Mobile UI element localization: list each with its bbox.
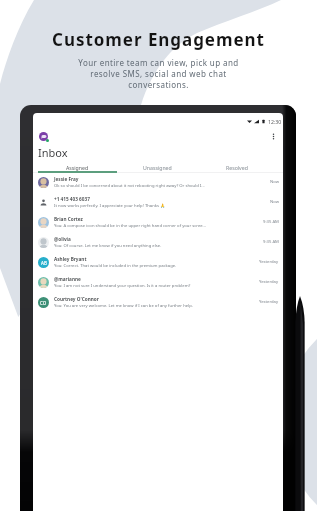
staticText: Customer Engagement <box>52 28 265 51</box>
staticText: AB <box>41 260 47 266</box>
button[interactable]: Jessie Fray <box>33 172 283 192</box>
staticText: Inbox <box>38 145 68 160</box>
staticText: @marianne <box>54 276 81 282</box>
button[interactable]: AB <box>33 252 283 272</box>
staticText: Yesterday <box>259 259 279 265</box>
staticText: Now <box>270 179 279 185</box>
staticText: You: Correct. That would be included in … <box>54 263 177 269</box>
staticText: You: You are very welcome. Let me know i… <box>54 303 193 309</box>
staticText: Yesterday <box>259 279 279 285</box>
staticText: CO <box>40 300 47 306</box>
staticText: 9:35 AM <box>263 219 279 225</box>
staticText: You: I am not sure I understand your que… <box>54 283 191 289</box>
staticText: Assigned <box>66 164 89 171</box>
staticText: Jessie Fray <box>54 176 79 182</box>
button[interactable]: Unassigned <box>117 159 197 173</box>
button[interactable]: @marianne <box>33 272 283 292</box>
staticText: Resolved <box>226 164 248 171</box>
staticText: 9:35 AM <box>263 239 279 245</box>
staticText: Courtney O'Connor <box>54 296 99 302</box>
staticText: You: Of course. Let me know if you need … <box>54 243 162 249</box>
staticText: Ashley Bryant <box>54 256 87 262</box>
button[interactable]: CO <box>33 292 283 312</box>
staticText: @olivia <box>54 236 71 242</box>
staticText: Your entire team can view, pick up and r… <box>78 57 239 90</box>
staticText: It now works perfectly. I appreciate you… <box>54 203 166 209</box>
staticText: Unassigned <box>143 164 172 171</box>
button[interactable]: @olivia <box>33 232 283 252</box>
staticText: +1 415 403 6037 <box>54 196 90 202</box>
staticText: You: A compose icon should be in the upp… <box>54 223 206 229</box>
button[interactable]: Resolved <box>197 159 277 173</box>
button[interactable]: More options <box>267 130 280 143</box>
staticText: Ok so should I be concerned about it not… <box>54 183 205 189</box>
staticText: Yesterday <box>259 299 279 305</box>
other: Stylus <box>294 296 307 511</box>
staticText: 12:30 <box>268 118 282 125</box>
button[interactable]: Brian Cortez <box>33 212 283 232</box>
button[interactable]: Assigned <box>38 159 117 173</box>
button[interactable]: +1 415 403 6037 <box>33 192 283 212</box>
staticText: Brian Cortez <box>54 216 83 222</box>
staticText: Now <box>270 199 279 205</box>
